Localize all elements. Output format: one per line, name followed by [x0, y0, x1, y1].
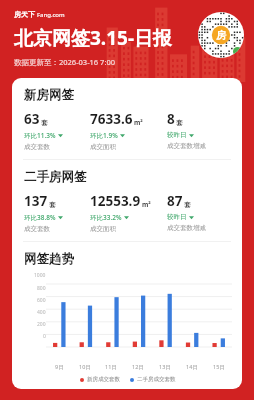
staticText: 二手房成交套数: [137, 376, 176, 383]
staticText: 套: [176, 119, 183, 127]
staticText: 较昨日: [167, 131, 187, 139]
staticText: 7633.6: [90, 110, 133, 128]
staticText: 9日: [55, 363, 64, 371]
staticText: 63: [24, 110, 40, 128]
staticText: m²: [134, 118, 143, 127]
staticText: 10日: [79, 363, 91, 371]
staticText: 套: [49, 201, 56, 209]
button[interactable]: 网签趋势: [12, 242, 242, 389]
staticText: 200: [37, 321, 46, 328]
staticText: 137: [24, 192, 48, 210]
staticText: 成交套数增减: [167, 142, 206, 150]
staticText: 新房网签: [24, 87, 74, 103]
staticText: 环比11.3%: [24, 131, 56, 140]
staticText: Fang.com: [37, 11, 65, 19]
staticText: 13日: [159, 363, 171, 371]
button[interactable]: 二手房网签: [12, 160, 242, 241]
staticText: 成交套数: [24, 225, 50, 233]
staticText: 北京网签3.15-日报: [14, 25, 173, 51]
staticText: 套: [184, 201, 191, 209]
staticText: 0: [43, 333, 46, 340]
staticText: 成交面积: [90, 225, 116, 233]
staticText: 套: [41, 119, 48, 127]
staticText: 87: [167, 192, 183, 210]
staticText: 12日: [132, 363, 144, 371]
staticText: 11日: [105, 363, 117, 371]
staticText: 8: [167, 110, 175, 128]
staticText: 成交面积: [90, 143, 116, 151]
staticText: 600: [37, 297, 46, 304]
staticText: 网签趋势: [24, 251, 74, 267]
staticText: 新房成交套数: [87, 376, 120, 383]
staticText: 较昨日: [167, 213, 187, 221]
button[interactable]: 扫码二维码: [198, 12, 244, 58]
staticText: 12553.9: [90, 192, 141, 210]
staticText: 15日: [213, 363, 225, 371]
staticText: 二手房网签: [24, 169, 87, 185]
staticText: 房天下: [14, 10, 35, 19]
button[interactable]: 新房网签: [12, 78, 242, 159]
staticText: 数据更新至：2026-03-16 7:00: [14, 57, 115, 67]
staticText: 400: [37, 309, 46, 316]
staticText: 环比38.8%: [24, 213, 56, 222]
staticText: 环比33.2%: [90, 213, 122, 222]
staticText: 环比1.9%: [90, 131, 118, 140]
staticText: m²: [142, 200, 151, 209]
staticText: 14日: [186, 363, 198, 371]
staticText: 1000: [34, 272, 46, 279]
staticText: 房: [216, 29, 226, 42]
staticText: 成交套数: [24, 143, 50, 151]
staticText: 800: [37, 285, 46, 292]
staticText: 成交套数增减: [167, 224, 206, 232]
